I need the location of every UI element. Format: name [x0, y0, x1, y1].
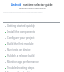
staticText: Publish a release build: [7, 54, 35, 58]
staticText: Frequently asked items: [7, 71, 36, 72]
staticText: Build the first module: [7, 42, 34, 46]
button[interactable]: Build the first module: [5, 41, 61, 47]
button[interactable]: Publish a release build: [5, 53, 61, 59]
button[interactable]: Troubleshooting steps: [5, 65, 61, 71]
staticText: Getting started quickly: [7, 24, 35, 28]
button[interactable]: Configure your project: [5, 35, 61, 41]
button[interactable]: Frequently asked items: [5, 71, 61, 72]
staticText: Configure your project: [7, 36, 35, 40]
button[interactable]: Getting started quickly: [5, 23, 61, 29]
staticText: Run tests on device: [7, 48, 31, 52]
staticText: Install the components: [7, 30, 36, 34]
staticText: runtime selector guide: [23, 3, 53, 7]
button[interactable]: Run tests on device: [5, 47, 61, 53]
staticText: a faint small breadcrumb line of text sp…: [3, 11, 43, 13]
staticText: selected items description: [19, 7, 46, 10]
button[interactable]: Monitor app performance: [5, 59, 61, 65]
staticText: Troubleshooting steps: [7, 66, 35, 70]
button[interactable]: Install the components: [5, 29, 61, 35]
staticText: Android: [11, 3, 22, 7]
staticText: Monitor app performance: [7, 60, 39, 64]
